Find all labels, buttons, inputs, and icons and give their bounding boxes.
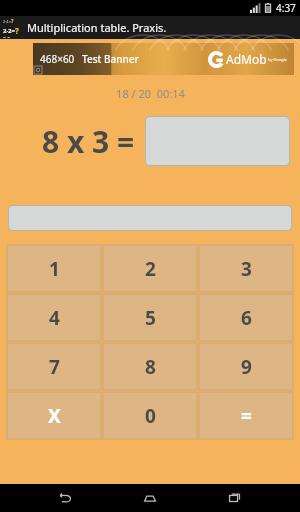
button[interactable]: 5 bbox=[103, 294, 197, 341]
staticText: 4 bbox=[49, 305, 60, 331]
staticText: ? bbox=[15, 25, 19, 36]
button[interactable]: Equals bbox=[199, 392, 293, 439]
staticText: 2·3= bbox=[3, 36, 13, 38]
staticText: AdMob bbox=[226, 51, 267, 67]
button[interactable]: Back bbox=[45, 484, 85, 512]
button[interactable]: 3 bbox=[199, 245, 293, 292]
button[interactable]: Answer input bbox=[8, 205, 292, 231]
staticText: 4:37 bbox=[276, 1, 296, 15]
staticText: Multiplication table. Praxis. bbox=[27, 20, 167, 35]
staticText: 2·2= bbox=[3, 27, 15, 35]
staticText: 6 bbox=[241, 305, 252, 331]
staticText: 468×60 bbox=[40, 52, 75, 66]
button[interactable]: Answer bbox=[145, 116, 290, 166]
button[interactable]: Recent apps bbox=[215, 484, 255, 512]
staticText: Test Banner bbox=[82, 52, 139, 66]
staticText: by Google bbox=[267, 57, 287, 62]
button[interactable]: Advertisement bbox=[33, 43, 294, 75]
staticText: 9 bbox=[241, 354, 252, 380]
staticText: 2 bbox=[145, 256, 156, 282]
button[interactable]: 2 bbox=[103, 245, 197, 292]
staticText: X bbox=[48, 403, 61, 429]
staticText: 3 bbox=[241, 256, 252, 282]
staticText: 0 bbox=[145, 403, 156, 429]
staticText: 1 bbox=[49, 256, 60, 282]
button[interactable]: 0 bbox=[103, 392, 197, 439]
button[interactable]: 1 bbox=[7, 245, 101, 292]
button[interactable]: 9 bbox=[199, 343, 293, 390]
button[interactable]: 6 bbox=[199, 294, 293, 341]
button[interactable]: 4 bbox=[7, 294, 101, 341]
staticText: 8 bbox=[145, 354, 156, 380]
staticText: 2·4= bbox=[3, 19, 11, 24]
staticText: 5 bbox=[145, 305, 156, 331]
staticText: 18 / 20 00:14 bbox=[116, 86, 185, 101]
staticText: 7 bbox=[49, 354, 60, 380]
button[interactable]: Home bbox=[130, 484, 170, 512]
staticText: ? bbox=[11, 18, 14, 25]
staticText: 8 x 3 = bbox=[42, 121, 135, 162]
button[interactable]: Clear bbox=[7, 392, 101, 439]
button[interactable]: 8 bbox=[103, 343, 197, 390]
staticText: = bbox=[241, 403, 252, 429]
button[interactable]: 7 bbox=[7, 343, 101, 390]
